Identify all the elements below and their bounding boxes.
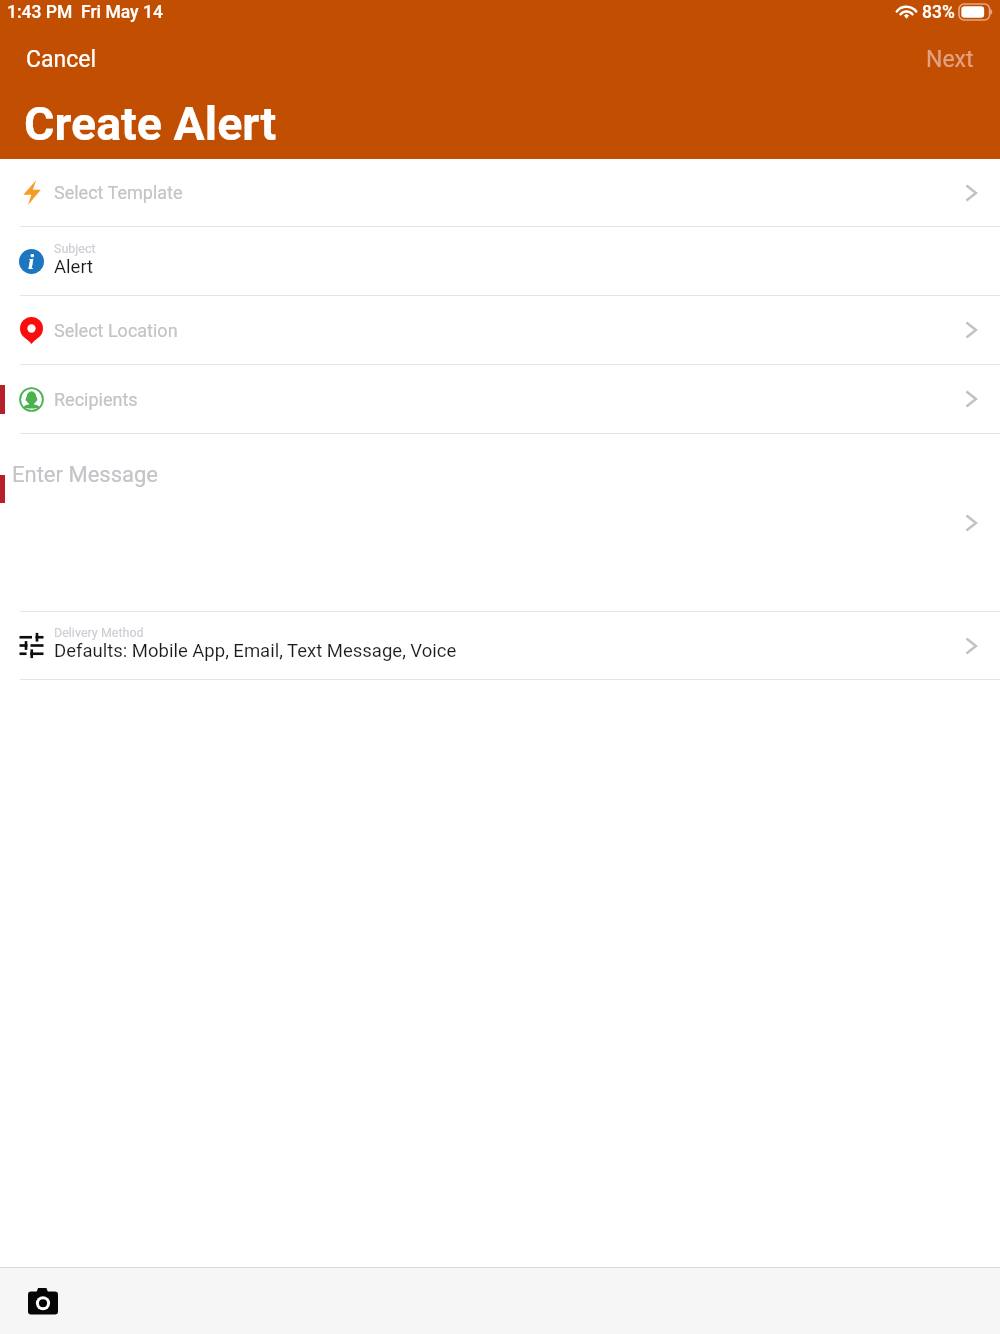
- button[interactable]: i: [0, 227, 1000, 295]
- button[interactable]: Select Location: [0, 296, 1000, 364]
- button[interactable]: Recipients: [0, 365, 1000, 433]
- staticText: Select Location: [54, 320, 178, 341]
- staticText: Alert: [54, 256, 94, 278]
- button[interactable]: Cancel: [26, 37, 97, 81]
- staticText: Cancel: [26, 46, 97, 72]
- staticText: Recipients: [54, 389, 138, 410]
- staticText: Create Alert: [24, 97, 277, 151]
- staticText: Enter Message: [12, 462, 158, 488]
- button[interactable]: Camera: [21, 1279, 65, 1323]
- staticText: Next: [926, 46, 974, 72]
- button[interactable]: Select Template: [0, 159, 1000, 226]
- staticText: Delivery Method: [54, 625, 144, 640]
- button[interactable]: Delivery Method: [0, 612, 1000, 679]
- staticText: Subject: [54, 241, 96, 256]
- staticText: Fri May 14: [81, 2, 163, 23]
- staticText: Defaults: Mobile App, Email, Text Messag…: [54, 640, 457, 662]
- staticText: i: [28, 249, 35, 273]
- staticText: Select Template: [54, 182, 183, 203]
- staticText: 83%: [922, 2, 955, 23]
- button[interactable]: Enter Message: [0, 434, 1000, 611]
- button[interactable]: Next: [926, 37, 974, 81]
- staticText: 1:43 PM: [7, 2, 73, 23]
